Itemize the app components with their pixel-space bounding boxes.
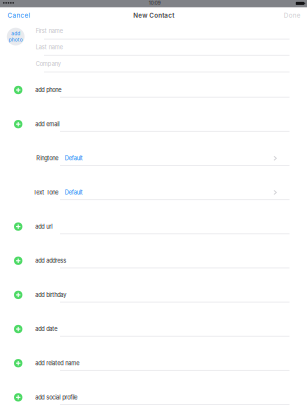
staticText: add social profile: [35, 394, 77, 401]
staticText: photo: [9, 37, 23, 43]
button[interactable]: Done: [0, 0, 307, 410]
staticText: Default: [65, 155, 83, 162]
staticText: add birthday: [35, 291, 66, 298]
staticText: add email: [35, 121, 59, 128]
button[interactable]: add url: [0, 0, 307, 410]
staticText: Cancel: [8, 12, 31, 19]
staticText: 10:09: [149, 0, 161, 6]
staticText: add related name: [35, 360, 79, 367]
button[interactable]: add email: [0, 0, 307, 410]
button[interactable]: add address: [0, 0, 307, 410]
staticText: add: [11, 31, 20, 36]
staticText: add address: [35, 257, 66, 264]
button[interactable]: Ringtone: [0, 0, 307, 410]
button[interactable]: add related name: [0, 0, 307, 410]
staticText: Done: [284, 12, 301, 19]
button[interactable]: First name: [0, 0, 307, 410]
staticText: Last name: [36, 44, 63, 51]
button[interactable]: Last name: [0, 0, 307, 410]
staticText: First name: [36, 28, 63, 34]
staticText: add url: [35, 223, 52, 230]
button[interactable]: add phone: [0, 0, 307, 410]
staticText: Text Tone: [33, 189, 58, 196]
button[interactable]: add photo: [0, 0, 307, 410]
button[interactable]: Text Tone: [0, 0, 307, 410]
staticText: add date: [35, 326, 57, 332]
button[interactable]: add date: [0, 0, 307, 410]
staticText: add phone: [35, 87, 61, 93]
button[interactable]: Company: [0, 0, 307, 410]
button[interactable]: add birthday: [0, 0, 307, 410]
staticText: Ringtone: [36, 155, 58, 162]
staticText: Company: [36, 60, 61, 67]
button[interactable]: add social profile: [0, 0, 307, 410]
staticText: New Contact: [133, 12, 174, 19]
button[interactable]: Cancel: [0, 0, 307, 410]
staticText: Default: [65, 189, 83, 196]
